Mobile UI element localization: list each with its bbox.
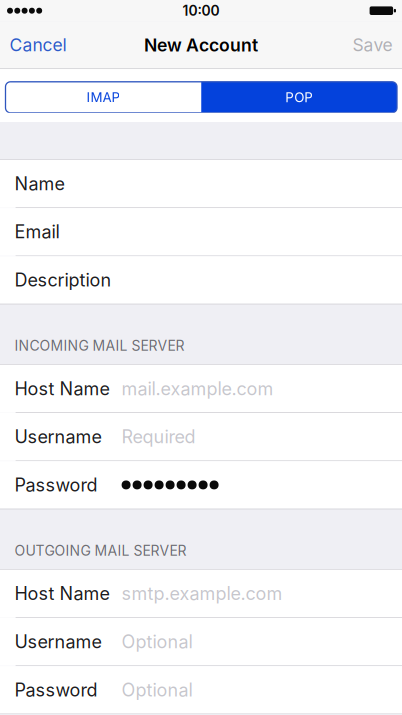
staticText: Optional — [122, 679, 193, 701]
button[interactable]: Password — [0, 461, 402, 509]
button[interactable]: Password — [0, 666, 402, 714]
button[interactable]: POP — [201, 82, 397, 113]
staticText: Password — [15, 679, 98, 701]
button[interactable]: Description — [0, 256, 402, 304]
button[interactable]: Username — [0, 413, 402, 460]
staticText: Optional — [122, 631, 193, 653]
staticText: Email — [15, 221, 60, 243]
staticText: Required — [122, 426, 196, 448]
button[interactable]: Email — [0, 208, 402, 256]
button[interactable]: IMAP — [5, 82, 201, 113]
staticText: Username — [15, 426, 102, 448]
staticText: Password — [15, 474, 98, 496]
staticText: INCOMING MAIL SERVER — [15, 337, 185, 354]
staticText: Host Name — [15, 378, 110, 399]
staticText: smtp.example.com — [122, 583, 283, 604]
button[interactable]: Cancel — [0, 21, 77, 69]
staticText: New Account — [144, 34, 258, 56]
button[interactable]: Host Name — [0, 570, 402, 617]
staticText: IMAP — [86, 89, 120, 105]
staticText: OUTGOING MAIL SERVER — [15, 542, 187, 559]
staticText: POP — [285, 89, 313, 105]
staticText: Name — [15, 173, 65, 195]
staticText: Save — [352, 34, 392, 55]
button[interactable]: Save — [341, 21, 402, 69]
staticText: Host Name — [15, 583, 110, 604]
staticText: Description — [15, 269, 112, 291]
staticText: Cancel — [9, 34, 66, 55]
button[interactable]: Name — [0, 160, 402, 207]
staticText: Username — [15, 631, 102, 653]
button[interactable]: Host Name — [0, 365, 402, 412]
staticText: 10:00 — [182, 2, 219, 19]
button[interactable]: Username — [0, 618, 402, 665]
staticText: mail.example.com — [122, 378, 274, 399]
